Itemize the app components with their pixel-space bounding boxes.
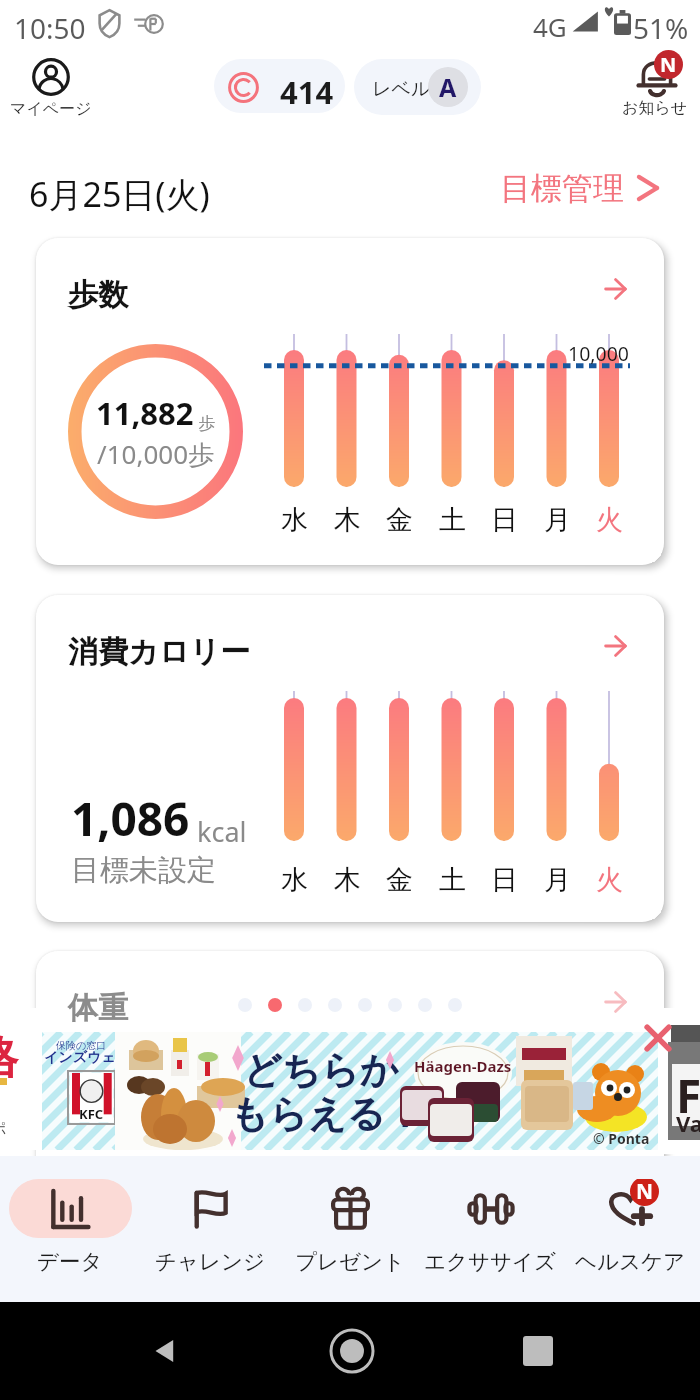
- staticText: 目標管理: [500, 169, 624, 208]
- staticText: どちらか: [243, 1046, 399, 1094]
- staticText: F: [676, 1064, 700, 1127]
- button[interactable]: プレゼント: [280, 1156, 420, 1275]
- staticText: 11,882: [96, 392, 194, 434]
- staticText: 金: [386, 503, 413, 537]
- staticText: マイページ: [10, 99, 92, 119]
- button[interactable]: 体重: [36, 951, 664, 1278]
- staticText: 月: [544, 863, 571, 897]
- staticText: 1,086: [71, 787, 190, 850]
- button[interactable]: 414: [214, 59, 345, 113]
- button[interactable]: データ: [0, 1156, 140, 1275]
- button[interactable]: N: [560, 1156, 700, 1275]
- staticText: kcal: [190, 813, 247, 850]
- button[interactable]: 歩数の詳細: [598, 272, 632, 306]
- staticText: KFC: [79, 1105, 104, 1123]
- button[interactable]: 目標管理: [500, 165, 661, 211]
- staticText: 水: [281, 503, 308, 537]
- button[interactable]: 消費カロリー: [36, 595, 664, 922]
- staticText: お知らせ: [622, 98, 688, 118]
- staticText: A: [439, 70, 457, 104]
- button[interactable]: マイページ: [8, 58, 94, 119]
- button[interactable]: お知らせ: [614, 56, 696, 118]
- staticText: 6月25日(火): [29, 171, 210, 217]
- staticText: 51%: [633, 9, 689, 47]
- staticText: /10,000歩: [97, 436, 215, 472]
- button[interactable]: 歩数: [36, 238, 664, 565]
- staticText: 日: [491, 863, 518, 897]
- staticText: インズウェブ!: [44, 1047, 116, 1065]
- staticText: 金: [386, 863, 413, 897]
- staticText: もらえる！: [230, 1090, 424, 1138]
- staticText: Va: [676, 1108, 700, 1138]
- staticText: 月: [544, 503, 571, 537]
- button[interactable]: レベル: [354, 59, 481, 115]
- staticText: 木: [334, 503, 361, 537]
- staticText: データ: [37, 1248, 103, 1275]
- staticText: 水: [281, 863, 308, 897]
- staticText: 歩数: [68, 276, 128, 314]
- staticText: 歩: [194, 411, 216, 434]
- staticText: 体重: [68, 989, 128, 1027]
- staticText: 4G: [533, 9, 567, 44]
- staticText: 日: [491, 503, 518, 537]
- staticText: 10:50: [14, 9, 86, 47]
- staticText: 土: [439, 863, 466, 897]
- staticText: 格: [0, 1030, 10, 1087]
- button[interactable]: チャレンジ: [140, 1156, 280, 1275]
- staticText: 10,000: [568, 340, 629, 367]
- staticText: 消費カロリー: [68, 633, 251, 671]
- staticText: レベル: [372, 77, 431, 101]
- staticText: エクササイズ: [424, 1248, 557, 1275]
- staticText: 土: [439, 503, 466, 537]
- staticText: 火: [596, 863, 623, 897]
- staticText: チャレンジ: [155, 1248, 266, 1275]
- staticText: 火: [596, 503, 623, 537]
- button[interactable]: エクササイズ: [420, 1156, 560, 1275]
- staticText: N: [660, 51, 677, 78]
- staticText: Häagen-Dazs: [414, 1056, 512, 1076]
- staticText: 414: [280, 71, 334, 113]
- staticText: プレゼント: [295, 1248, 406, 1275]
- staticText: 木: [334, 863, 361, 897]
- staticText: 目標未設定: [71, 852, 216, 889]
- button[interactable]: 消費カロリーの詳細: [598, 629, 632, 663]
- staticText: 保険の窓口: [56, 1039, 107, 1052]
- button[interactable]: 広告を閉じる: [641, 1021, 675, 1055]
- staticText: ヘルスケア: [575, 1248, 686, 1275]
- staticText: N: [636, 1179, 654, 1206]
- staticText: © Ponta: [593, 1129, 650, 1148]
- staticText: ーポン: [0, 1120, 13, 1150]
